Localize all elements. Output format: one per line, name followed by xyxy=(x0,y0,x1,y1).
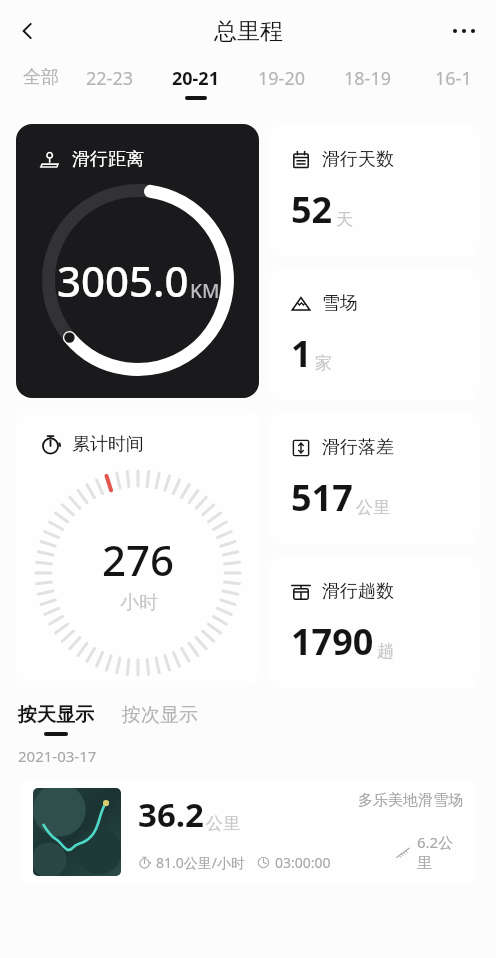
button[interactable]: 18-19 xyxy=(324,62,410,112)
staticText: 19-20 xyxy=(258,66,305,91)
button[interactable]: 滑行天数 xyxy=(269,124,480,257)
staticText: 20-21 xyxy=(172,66,219,91)
staticText: 家 xyxy=(315,353,332,374)
button[interactable]: 36.2 xyxy=(20,778,476,886)
button[interactable]: 滑行落差 xyxy=(269,412,480,545)
button[interactable]: 20-21 xyxy=(152,62,238,112)
staticText: 滑行距离 xyxy=(72,148,144,171)
staticText: KM xyxy=(190,278,220,304)
staticText: 雪场 xyxy=(322,292,358,315)
button[interactable]: More options xyxy=(440,7,488,55)
staticText: 公里 xyxy=(356,497,390,518)
staticText: 1 xyxy=(291,329,312,378)
button[interactable]: 全部 xyxy=(14,62,67,112)
staticText: 小时 xyxy=(120,591,158,615)
staticText: 滑行落差 xyxy=(322,436,394,459)
staticText: 52 xyxy=(291,185,333,234)
staticText: 按天显示 xyxy=(18,703,94,727)
button[interactable]: 雪场 xyxy=(269,268,480,401)
button[interactable]: 滑行距离 xyxy=(16,124,259,398)
staticText: 03:00:00 xyxy=(275,853,331,872)
staticText: 2021-03-17 xyxy=(18,746,97,766)
staticText: 517 xyxy=(291,473,353,522)
button[interactable]: 累计时间 xyxy=(16,409,259,687)
staticText: 多乐美地滑雪场 xyxy=(358,791,463,810)
staticText: 公里 xyxy=(206,813,240,834)
staticText: 36.2 xyxy=(138,792,204,837)
staticText: 趟 xyxy=(377,641,394,662)
button[interactable]: Back xyxy=(4,7,52,55)
staticText: 按次显示 xyxy=(122,703,198,727)
staticText: 天 xyxy=(336,209,353,230)
staticText: 276 xyxy=(102,531,175,588)
staticText: 3005.0 xyxy=(57,252,189,309)
staticText: 累计时间 xyxy=(72,433,144,456)
staticText: 16-1 xyxy=(435,66,472,91)
button[interactable]: 16-1 xyxy=(410,62,496,112)
staticText: 6.2公里 xyxy=(417,832,463,873)
staticText: 滑行天数 xyxy=(322,148,394,171)
button[interactable]: 19-20 xyxy=(238,62,324,112)
button[interactable]: 按次显示 xyxy=(122,703,198,727)
button[interactable]: 22-23 xyxy=(67,62,152,112)
staticText: 总里程 xyxy=(214,17,283,46)
staticText: 1790 xyxy=(291,617,374,666)
staticText: 18-19 xyxy=(344,66,391,91)
staticText: 滑行趟数 xyxy=(322,580,394,603)
button[interactable]: 按天显示 xyxy=(18,703,100,736)
staticText: 81.0公里/小时 xyxy=(156,853,245,872)
staticText: 22-23 xyxy=(86,66,133,91)
button[interactable]: 滑行趟数 xyxy=(269,556,480,689)
staticText: 全部 xyxy=(23,66,59,89)
